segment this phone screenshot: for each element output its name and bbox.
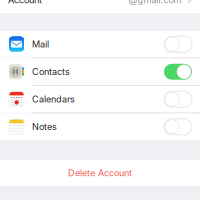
staticText: Notes	[32, 121, 57, 132]
staticText: Contacts	[32, 66, 70, 77]
button[interactable]: Notes	[0, 113, 200, 140]
staticText: @gmail.com	[128, 0, 181, 5]
button[interactable]: Account	[0, 0, 200, 13]
staticText: Calendars	[32, 94, 75, 105]
staticText: Delete Account	[68, 167, 132, 178]
button[interactable]: Mail	[0, 31, 200, 57]
button[interactable]: Delete Account	[0, 160, 200, 186]
button[interactable]: Contacts	[0, 58, 200, 85]
button[interactable]: Calendars	[0, 86, 200, 112]
staticText: Mail	[32, 39, 49, 50]
staticText: Account	[8, 0, 42, 5]
